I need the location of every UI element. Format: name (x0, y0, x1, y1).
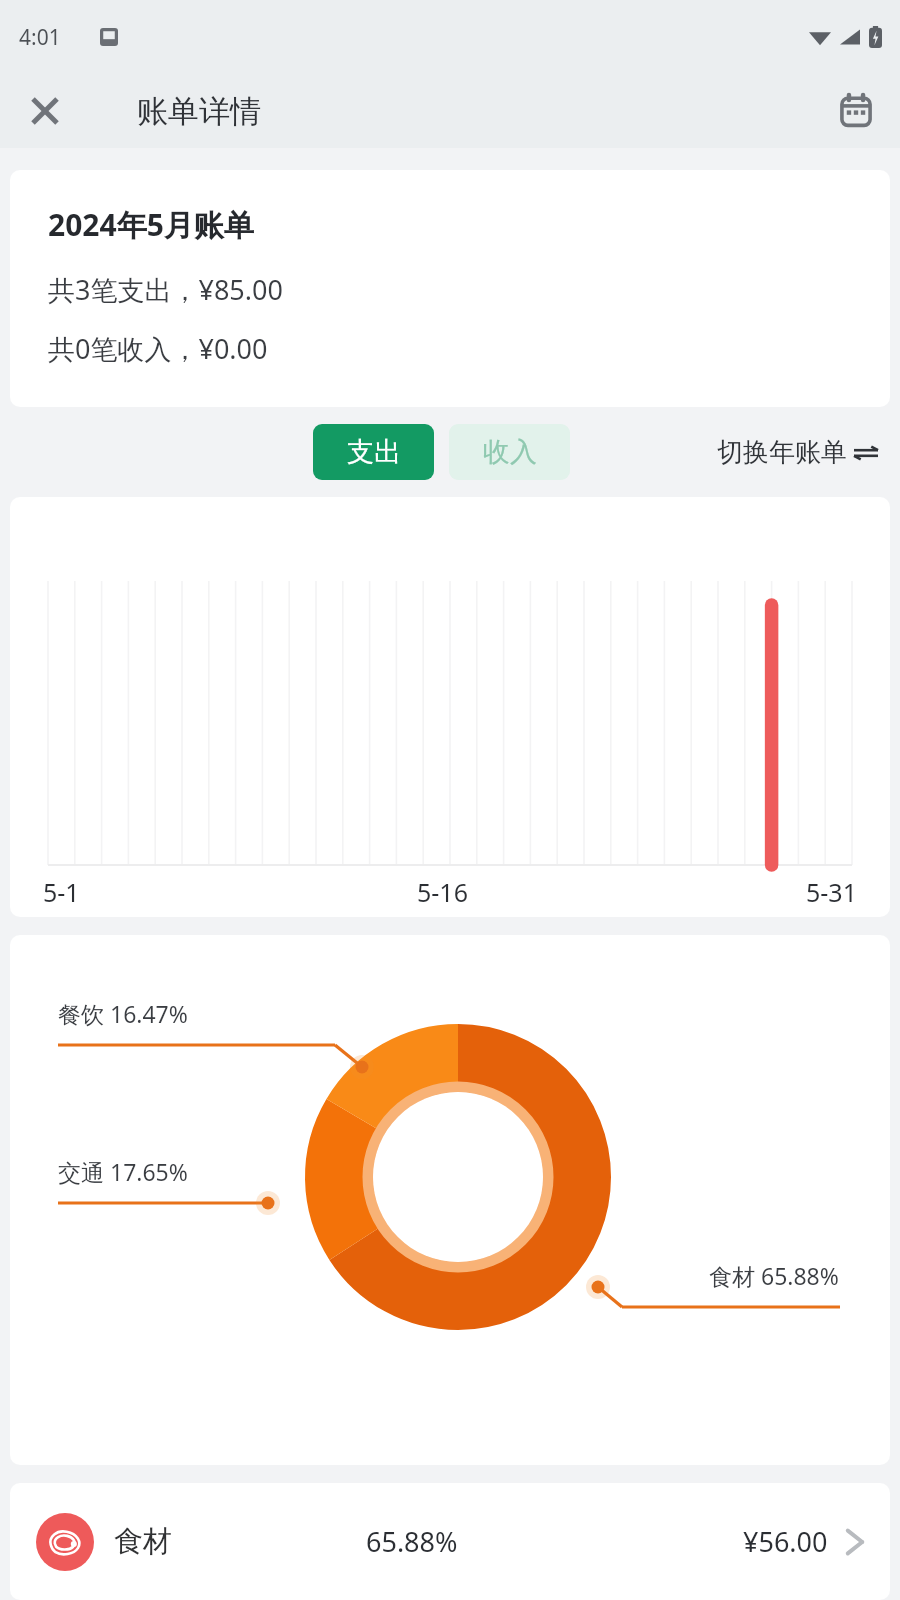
staticText: 食材 (114, 1523, 172, 1560)
staticText: 共0笔收入，¥0.00 (48, 330, 268, 367)
button[interactable]: Close (22, 88, 68, 134)
button[interactable]: 收入 (449, 424, 570, 480)
button[interactable]: 切换年账单 (717, 436, 900, 469)
staticText: 支出 (347, 435, 401, 469)
button[interactable]: 2024年5月账单 (10, 170, 890, 407)
staticText: 餐饮 16.47% (58, 998, 188, 1029)
staticText: 交通 17.65% (58, 1156, 188, 1187)
staticText: ¥56.00 (743, 1523, 828, 1560)
staticText: 65.88% (366, 1523, 458, 1560)
button[interactable]: 食材 (10, 1483, 890, 1600)
staticText: 5-31 (806, 875, 857, 909)
staticText: 食材 65.88% (709, 1260, 839, 1291)
staticText: 5-1 (43, 875, 80, 909)
button[interactable]: 5-1 (10, 497, 890, 917)
button[interactable]: Calendar (832, 87, 880, 135)
button[interactable]: 支出 (313, 424, 434, 480)
staticText: 5-16 (417, 875, 468, 909)
staticText: 4:01 (19, 23, 61, 52)
staticText: 切换年账单 (717, 436, 847, 469)
button[interactable]: 餐饮 16.47% (10, 935, 890, 1465)
staticText: 账单详情 (137, 92, 261, 131)
staticText: 共3笔支出，¥85.00 (48, 271, 283, 308)
staticText: 收入 (483, 435, 537, 469)
staticText: 2024年5月账单 (48, 204, 254, 245)
